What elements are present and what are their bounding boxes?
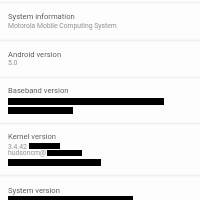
staticText: System information xyxy=(8,12,75,21)
staticText: System version xyxy=(8,186,60,195)
staticText: Kernel version xyxy=(8,132,57,141)
button[interactable]: Baseband version xyxy=(0,78,200,123)
button[interactable]: Kernel version xyxy=(0,124,200,175)
staticText: hudsoncm@ xyxy=(8,149,47,157)
staticText: 5.0 xyxy=(8,59,18,67)
staticText: Motorola Mobile Computing System xyxy=(8,22,117,30)
staticText: Android version xyxy=(8,50,62,59)
button[interactable]: System information xyxy=(0,3,200,40)
staticText: 3.4.42 xyxy=(8,143,27,151)
staticText: Baseband version xyxy=(8,86,69,95)
button[interactable]: System version xyxy=(0,176,200,200)
button[interactable]: Android version xyxy=(0,41,200,77)
